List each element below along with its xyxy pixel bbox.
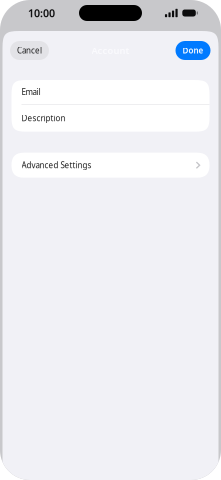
staticText: 10:00 (28, 6, 55, 20)
staticText: Email (21, 87, 40, 97)
button[interactable]: Done (175, 41, 210, 60)
button[interactable]: Advanced Settings (11, 153, 209, 178)
button[interactable]: Cancel (10, 41, 49, 60)
staticText: Cancel (17, 45, 42, 56)
staticText: Done (182, 45, 203, 56)
staticText: Advanced Settings (21, 160, 91, 170)
staticText: Description (21, 113, 65, 123)
